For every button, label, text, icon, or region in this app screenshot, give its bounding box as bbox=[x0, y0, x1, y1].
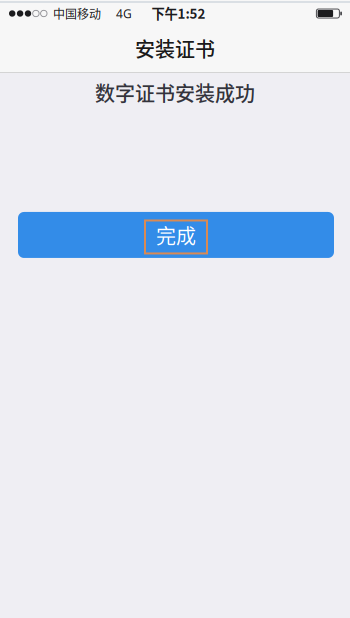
staticText: 下午1:52 bbox=[151, 3, 205, 23]
staticText: 数字证书安装成功 bbox=[95, 78, 255, 107]
staticText: 4G bbox=[116, 5, 132, 22]
staticText: 完成 bbox=[156, 220, 196, 249]
staticText: 中国移动 bbox=[53, 5, 101, 22]
button[interactable]: 完成 bbox=[18, 212, 334, 258]
staticText: 安装证书 bbox=[135, 34, 215, 63]
